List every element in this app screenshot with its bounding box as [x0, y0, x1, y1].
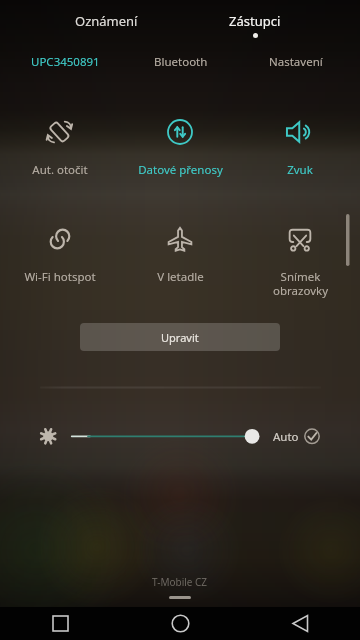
button[interactable]: Zvuk	[240, 117, 360, 178]
button[interactable]: Zástupci	[180, 0, 329, 45]
button[interactable]: Back	[240, 607, 360, 640]
button[interactable]: V letadle	[120, 224, 240, 285]
staticText: Upravit	[161, 330, 199, 345]
button[interactable]: Upravit	[80, 323, 280, 351]
staticText: Auto	[273, 429, 299, 445]
button[interactable]: Wi-Fi hotspot	[0, 224, 120, 285]
button[interactable]: Oznámení	[32, 0, 180, 45]
staticText: Oznámení	[75, 12, 138, 30]
staticText: Bluetooth	[154, 54, 208, 70]
button[interactable]: Bluetooth	[123, 45, 238, 72]
staticText: Aut. otočit	[32, 162, 88, 178]
button[interactable]: Snímek obrazovky	[240, 224, 360, 298]
staticText: V letadle	[157, 269, 204, 285]
staticText: UPC3450891	[31, 54, 100, 70]
button[interactable]: Nastavení	[238, 45, 353, 72]
button[interactable]: UPC3450891	[7, 45, 123, 72]
staticText: Nastavení	[269, 54, 323, 70]
staticText: Wi-Fi hotspot	[24, 269, 96, 285]
staticText: Zástupci	[229, 12, 281, 30]
staticText: Datové přenosy	[138, 162, 223, 178]
button[interactable]: Aut. otočit	[0, 117, 120, 178]
staticText: Zvuk	[287, 162, 313, 178]
button[interactable]: Home	[120, 607, 240, 640]
button[interactable]: Datové přenosy	[120, 117, 240, 178]
staticText: Snímek obrazovky	[273, 269, 328, 298]
button[interactable]: Recents	[0, 607, 120, 640]
staticText: T-Mobile CZ	[152, 575, 208, 589]
